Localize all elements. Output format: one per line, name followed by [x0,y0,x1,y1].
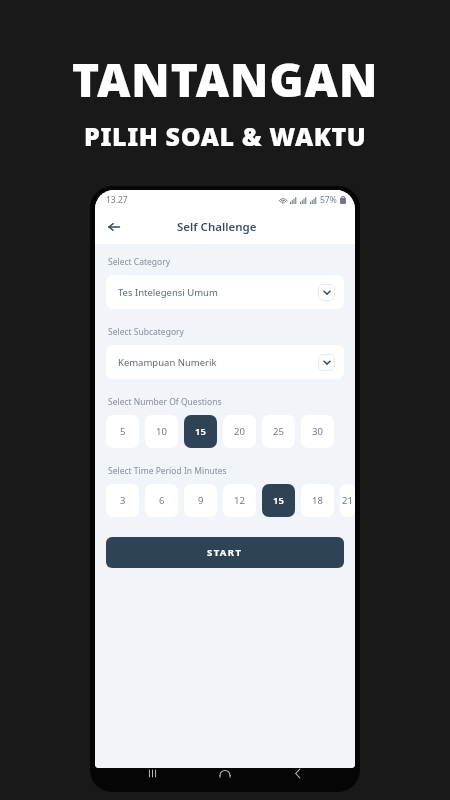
button[interactable]: Home [212,764,238,782]
button[interactable]: 10 [145,415,178,448]
staticText: Select Time Period In Minutes [108,465,227,477]
staticText: 15 [195,425,206,438]
staticText: 25 [273,425,284,438]
other: Expand [318,284,335,301]
staticText: 18 [312,494,323,507]
button[interactable]: Tes Intelegensi Umum [106,275,344,309]
button[interactable]: START [106,537,344,568]
button[interactable]: 20 [223,415,256,448]
staticText: 3 [120,494,126,507]
button[interactable]: Back [101,214,127,240]
staticText: PILIH SOAL & WAKTU [84,119,367,153]
button[interactable]: 5 [106,415,139,448]
staticText: 10 [156,425,167,438]
staticText: Select Subcategory [108,326,184,338]
staticText: 6 [159,494,165,507]
staticText: TANTANGAN [72,48,379,111]
button[interactable]: Back [285,764,311,782]
button[interactable]: 21 [340,484,355,517]
staticText: 9 [198,494,204,507]
staticText: 20 [234,425,245,438]
button[interactable]: Kemampuan Numerik [106,345,344,379]
staticText: 30 [312,425,323,438]
staticText: Select Category [108,256,171,268]
button[interactable]: 15 [262,484,295,517]
button[interactable]: Recents [139,764,165,782]
staticText: 21 [342,494,353,507]
button[interactable]: 6 [145,484,178,517]
button[interactable]: 3 [106,484,139,517]
button[interactable]: 30 [301,415,334,448]
button[interactable]: 9 [184,484,217,517]
button[interactable]: 18 [301,484,334,517]
staticText: Kemampuan Numerik [118,356,217,369]
staticText: Select Number Of Questions [108,396,222,408]
other: Expand [318,354,335,371]
staticText: Self Challenge [177,219,257,235]
staticText: Tes Intelegensi Umum [118,286,218,299]
button[interactable]: 12 [223,484,256,517]
staticText: START [207,546,243,559]
staticText: 12 [234,494,245,507]
button[interactable]: 15 [184,415,217,448]
button[interactable]: 25 [262,415,295,448]
staticText: 15 [273,494,284,507]
staticText: 5 [120,425,126,438]
staticText: 13.27 [106,194,128,206]
staticText: 57% [320,194,337,206]
